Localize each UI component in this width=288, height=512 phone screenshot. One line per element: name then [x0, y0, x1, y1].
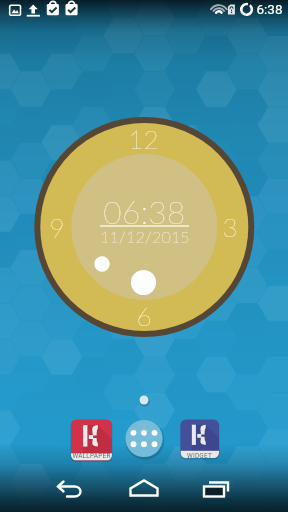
staticText: 06:38: [103, 193, 186, 231]
button[interactable]: Recent apps: [192, 466, 244, 512]
staticText: 6:38: [256, 1, 283, 17]
staticText: 3: [222, 211, 238, 242]
staticText: 6: [136, 300, 152, 331]
staticText: 9: [49, 211, 65, 242]
button[interactable]: Clock widget: [34, 108, 254, 328]
staticText: WALLPAPER: [72, 452, 111, 460]
button[interactable]: Back: [44, 466, 96, 512]
button[interactable]: Kustom Live Wallpaper: [71, 419, 112, 460]
staticText: 11/12/2015: [100, 227, 190, 246]
button[interactable]: Apps: [125, 419, 163, 457]
button[interactable]: Home: [118, 466, 170, 512]
button[interactable]: Kustom Widget: [180, 419, 219, 458]
staticText: WIDGET: [187, 452, 212, 460]
staticText: 12: [128, 123, 159, 154]
